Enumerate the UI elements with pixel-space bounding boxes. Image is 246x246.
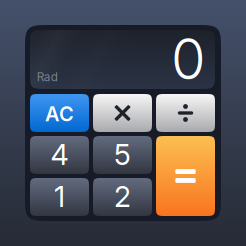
staticText: 1 bbox=[54, 179, 65, 214]
button[interactable]: 4 bbox=[30, 136, 89, 174]
button[interactable]: 2 bbox=[93, 178, 152, 216]
staticText: 5 bbox=[114, 137, 131, 172]
button[interactable]: Divide bbox=[156, 94, 215, 132]
button[interactable]: Equals bbox=[156, 136, 215, 216]
staticText: 2 bbox=[114, 179, 131, 214]
button[interactable]: 5 bbox=[93, 136, 152, 174]
button[interactable]: 1 bbox=[30, 178, 89, 216]
staticText: 0 bbox=[171, 25, 206, 93]
button[interactable]: Multiply bbox=[93, 94, 152, 132]
button[interactable]: All clear bbox=[30, 94, 89, 132]
staticText: 4 bbox=[50, 137, 68, 172]
staticText: Rad bbox=[37, 70, 58, 84]
staticText: AC bbox=[45, 102, 74, 126]
